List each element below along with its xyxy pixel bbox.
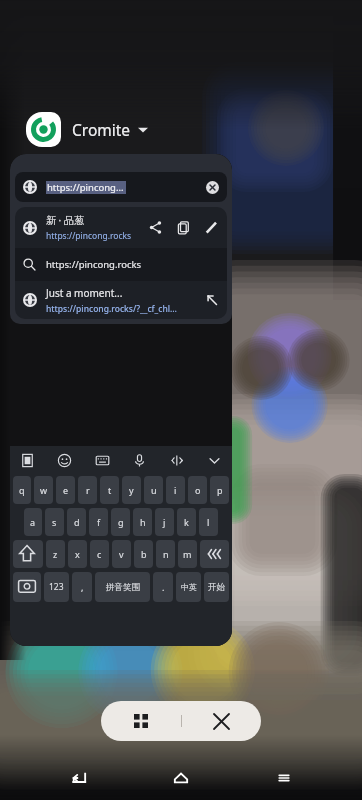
staticText: p: [217, 484, 223, 496]
staticText: https://pincong.rocks/?__cf_chl…: [46, 303, 177, 315]
button[interactable]: Home: [157, 755, 205, 800]
button[interactable]: h: [133, 508, 152, 536]
button[interactable]: q: [13, 476, 31, 504]
staticText: ,: [81, 581, 84, 593]
staticText: t: [108, 484, 112, 496]
button[interactable]: e: [56, 476, 75, 504]
staticText: h: [140, 516, 146, 528]
button[interactable]: Cromite: [26, 112, 154, 147]
staticText: o: [195, 484, 201, 496]
button[interactable]: 新 · 品葱: [15, 207, 227, 248]
button[interactable]: .: [153, 572, 173, 602]
button[interactable]: z: [46, 540, 65, 568]
staticText: https://pincong.rocks: [47, 181, 125, 194]
button[interactable]: u: [144, 476, 163, 504]
staticText: c: [97, 548, 102, 560]
staticText: https://pincong.rocks: [46, 258, 142, 271]
staticText: b: [141, 548, 147, 560]
staticText: 拼音笑围: [106, 582, 140, 593]
staticText: j: [163, 516, 166, 528]
button[interactable]: n: [156, 540, 175, 568]
button[interactable]: o: [188, 476, 207, 504]
staticText: f: [97, 516, 101, 528]
staticText: e: [63, 484, 69, 496]
button[interactable]: 开始: [204, 572, 229, 602]
button[interactable]: Back: [55, 755, 103, 800]
staticText: 开始: [208, 582, 225, 593]
button[interactable]: Emoji: [56, 452, 73, 469]
staticText: x: [75, 548, 80, 560]
staticText: q: [19, 484, 25, 496]
staticText: s: [52, 516, 57, 528]
staticText: https://pincong.rocks: [46, 230, 132, 242]
staticText: .: [162, 581, 165, 593]
button[interactable]: k: [177, 508, 196, 536]
button[interactable]: g: [111, 508, 130, 536]
staticText: w: [40, 484, 48, 496]
button[interactable]: Voice input: [131, 452, 148, 469]
button[interactable]: l: [199, 508, 218, 536]
button[interactable]: 中英: [176, 572, 201, 602]
staticText: l: [207, 516, 210, 528]
button[interactable]: Copy: [176, 220, 191, 235]
button[interactable]: Recents: [260, 755, 308, 800]
button[interactable]: Close: [201, 701, 241, 741]
button[interactable]: v: [112, 540, 131, 568]
button[interactable]: All apps: [121, 701, 161, 741]
button[interactable]: Clear: [206, 181, 219, 194]
button[interactable]: Share: [148, 220, 163, 235]
button[interactable]: j: [155, 508, 174, 536]
button[interactable]: y: [122, 476, 141, 504]
button[interactable]: Edit: [204, 220, 219, 235]
staticText: Just a moment...: [46, 286, 123, 300]
button[interactable]: Keyboard layout: [94, 452, 111, 469]
staticText: y: [129, 484, 134, 496]
button[interactable]: Just a moment...: [15, 281, 227, 319]
staticText: n: [163, 548, 169, 560]
button[interactable]: x: [68, 540, 87, 568]
staticText: 123: [49, 581, 64, 593]
button[interactable]: https://pincong.rocks: [15, 248, 227, 281]
staticText: a: [30, 516, 36, 528]
button[interactable]: Backspace: [200, 540, 229, 568]
button[interactable]: p: [210, 476, 229, 504]
staticText: i: [174, 484, 177, 496]
staticText: v: [119, 548, 124, 560]
staticText: 中英: [181, 582, 197, 592]
button[interactable]: 123: [44, 572, 69, 602]
button[interactable]: f: [89, 508, 108, 536]
staticText: d: [74, 516, 80, 528]
button[interactable]: t: [100, 476, 119, 504]
button[interactable]: r: [78, 476, 97, 504]
button[interactable]: w: [34, 476, 53, 504]
button[interactable]: i: [166, 476, 185, 504]
staticText: k: [184, 516, 189, 528]
button[interactable]: d: [67, 508, 86, 536]
staticText: 新 · 品葱: [46, 213, 84, 227]
button[interactable]: Settings: [13, 572, 41, 602]
button[interactable]: ,: [72, 572, 92, 602]
button[interactable]: Fill suggestion: [205, 293, 219, 307]
button[interactable]: https://pincong.rocks: [15, 172, 227, 202]
button[interactable]: 拼音笑围: [95, 572, 150, 602]
button[interactable]: c: [90, 540, 109, 568]
staticText: m: [183, 548, 192, 560]
button[interactable]: b: [134, 540, 153, 568]
staticText: u: [151, 484, 157, 496]
staticText: Cromite: [72, 119, 131, 140]
staticText: z: [53, 548, 58, 560]
button[interactable]: Cursor control: [169, 452, 186, 469]
button[interactable]: s: [45, 508, 64, 536]
button[interactable]: Shift: [13, 540, 43, 568]
staticText: g: [118, 516, 124, 528]
button[interactable]: Hide keyboard: [206, 452, 223, 469]
button[interactable]: m: [178, 540, 197, 568]
staticText: r: [86, 484, 90, 496]
button[interactable]: a: [24, 508, 42, 536]
button[interactable]: Sogou: [19, 452, 36, 469]
